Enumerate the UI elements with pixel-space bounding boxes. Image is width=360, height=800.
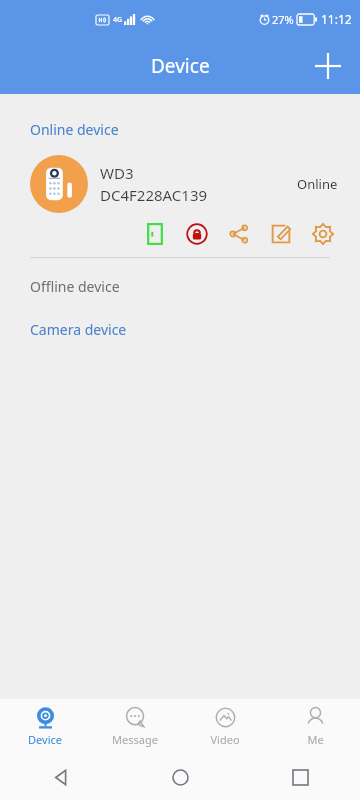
button[interactable]: Lock: [182, 219, 212, 249]
button[interactable]: Edit: [266, 219, 296, 249]
button[interactable]: Device: [0, 699, 90, 754]
staticText: Me: [307, 732, 324, 747]
staticText: Online device: [30, 120, 119, 139]
staticText: Camera device: [30, 320, 127, 339]
button[interactable]: Camera device: [0, 318, 360, 341]
button[interactable]: Back: [0, 754, 120, 800]
staticText: WD3: [100, 163, 134, 183]
button[interactable]: WD3: [0, 155, 360, 213]
staticText: DC4F228AC139: [100, 185, 208, 205]
staticText: 4G: [113, 15, 123, 25]
button[interactable]: Offline device: [0, 275, 360, 298]
button[interactable]: Video: [180, 699, 270, 754]
button[interactable]: Recent apps: [240, 754, 360, 800]
staticText: Device: [151, 53, 210, 79]
button[interactable]: Me: [270, 699, 360, 754]
staticText: Offline device: [30, 277, 120, 296]
staticText: Message: [112, 732, 158, 747]
staticText: Device: [28, 732, 62, 747]
button[interactable]: Settings: [308, 219, 338, 249]
button[interactable]: Message: [90, 699, 180, 754]
staticText: 27%: [272, 12, 294, 27]
button[interactable]: Online device: [0, 118, 360, 141]
button[interactable]: Open door: [140, 219, 170, 249]
button[interactable]: Home: [120, 754, 240, 800]
staticText: Online: [297, 175, 338, 193]
staticText: 11:12: [321, 11, 352, 27]
staticText: Video: [210, 732, 240, 747]
button[interactable]: Share: [224, 219, 254, 249]
button[interactable]: Add device: [306, 44, 350, 88]
